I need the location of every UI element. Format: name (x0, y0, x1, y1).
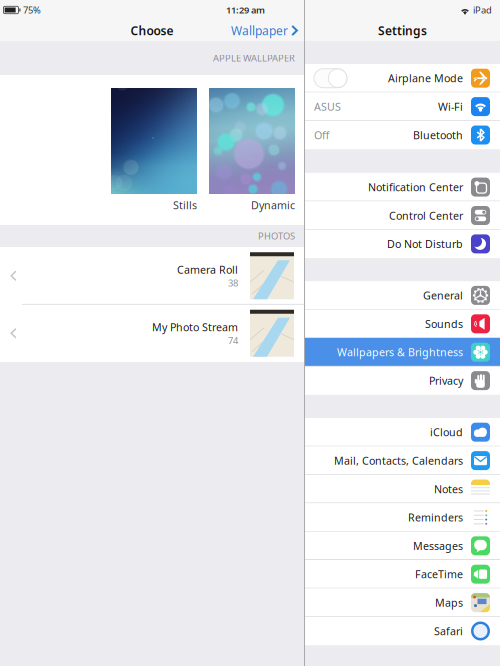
staticText: Wi-Fi (438, 99, 463, 114)
staticText: 11:29 am (226, 4, 265, 16)
staticText: Notification Center (368, 180, 463, 194)
staticText: Do Not Disturb (387, 237, 463, 251)
button[interactable]: Do Not Disturb (305, 230, 500, 258)
staticText: Settings (378, 22, 427, 38)
staticText: Airplane Mode (388, 71, 463, 85)
button[interactable]: Notes (305, 475, 500, 503)
staticText: FaceTime (415, 567, 463, 581)
staticText: 75% (23, 4, 41, 16)
button[interactable]: General (305, 281, 500, 310)
button[interactable]: Reminders (305, 503, 500, 532)
staticText: Privacy (429, 373, 463, 388)
staticText: Wallpapers & Brightness (337, 345, 463, 359)
button[interactable]: Notification Center (305, 173, 500, 201)
button[interactable]: Dynamic (209, 75, 295, 225)
staticText: Stills (173, 198, 197, 212)
button[interactable]: Wallpaper (231, 22, 304, 38)
button[interactable]: Mail, Contacts, Calendars (305, 446, 500, 475)
staticText: Wallpaper (231, 22, 288, 38)
staticText: APPLE WALLPAPER (213, 52, 295, 64)
button[interactable]: Airplane Mode (305, 64, 500, 92)
staticText: Reminders (408, 510, 463, 524)
staticText: Notes (434, 482, 463, 496)
staticText: Messages (413, 539, 463, 553)
staticText: iPad (473, 4, 492, 16)
staticText: My Photo Stream (152, 320, 238, 334)
staticText: Sounds (425, 317, 463, 331)
staticText: ASUS (314, 99, 341, 114)
staticText: Choose (130, 22, 173, 38)
button[interactable]: My Photo Stream (0, 304, 304, 362)
button[interactable]: Off (305, 121, 500, 149)
button[interactable]: ASUS (305, 92, 500, 121)
button[interactable]: Control Center (305, 201, 500, 230)
staticText: Bluetooth (413, 128, 463, 142)
button[interactable]: Privacy (305, 366, 500, 395)
staticText: Safari (434, 624, 463, 638)
button[interactable]: FaceTime (305, 560, 500, 588)
staticText: PHOTOS (258, 230, 295, 242)
button[interactable]: Messages (305, 532, 500, 560)
button[interactable]: Sounds (305, 310, 500, 338)
staticText: 38 (228, 277, 238, 289)
staticText: 74 (228, 334, 238, 346)
staticText: Control Center (389, 208, 463, 223)
button[interactable]: Stills (111, 75, 197, 225)
button[interactable]: iCloud (305, 418, 500, 446)
button[interactable]: Camera Roll (0, 247, 304, 304)
staticText: Camera Roll (177, 262, 238, 277)
button[interactable]: Wallpapers & Brightness (305, 338, 500, 366)
staticText: iCloud (430, 425, 463, 439)
staticText: Off (314, 128, 329, 142)
staticText: General (423, 288, 463, 302)
staticText: Mail, Contacts, Calendars (334, 453, 463, 468)
button[interactable]: Maps (305, 588, 500, 617)
staticText: Maps (435, 595, 463, 610)
staticText: Dynamic (251, 198, 295, 212)
button[interactable]: Safari (305, 617, 500, 645)
